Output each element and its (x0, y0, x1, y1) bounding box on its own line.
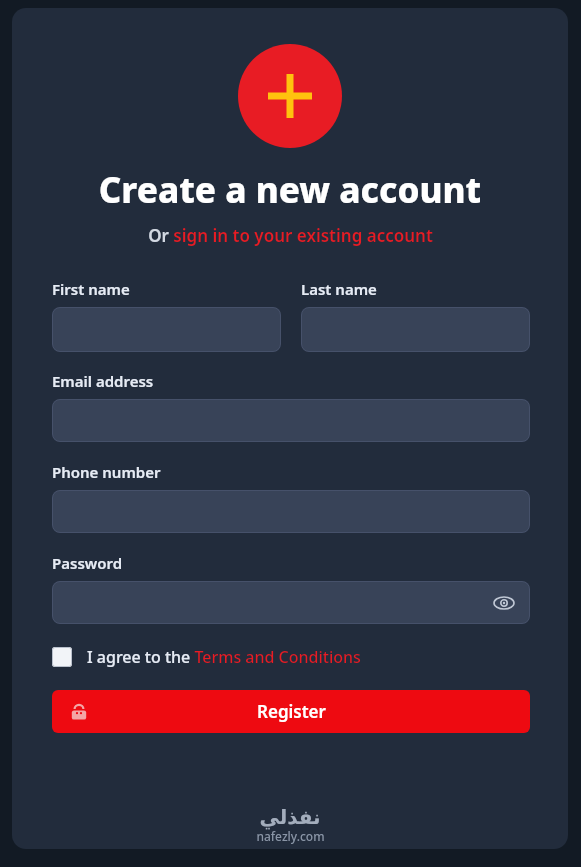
button[interactable]: Or sign in to your existing account (148, 224, 433, 247)
button[interactable]: Show password (492, 591, 516, 615)
staticText: Last name (301, 279, 377, 299)
staticText: Phone number (52, 462, 161, 482)
staticText: نفذلي (259, 805, 321, 828)
staticText: First name (52, 279, 130, 299)
staticText: I agree to the Terms and Conditions (87, 646, 361, 668)
staticText: Email address (52, 371, 154, 391)
button[interactable] (301, 307, 530, 352)
button[interactable]: Show password (52, 581, 530, 624)
staticText: Register (257, 700, 326, 723)
staticText: Password (52, 553, 123, 573)
button[interactable]: I agree to the Terms and Conditions (52, 646, 530, 668)
staticText: Create a new account (12, 166, 568, 214)
staticText: Or sign in to your existing account (148, 224, 433, 247)
button[interactable] (52, 307, 281, 352)
button[interactable]: Register (52, 690, 530, 733)
staticText: nafezly.com (256, 828, 325, 844)
button[interactable] (52, 490, 530, 533)
button[interactable] (52, 399, 530, 442)
